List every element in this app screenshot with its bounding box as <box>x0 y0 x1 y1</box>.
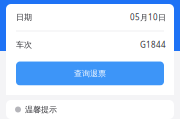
button[interactable]: 日期 <box>6 4 174 30</box>
staticText: 日期 <box>16 12 32 22</box>
staticText: G1844 <box>140 39 166 50</box>
button[interactable]: 车次 <box>6 31 174 58</box>
staticText: 温馨提示 <box>25 105 57 114</box>
staticText: 05月10日 <box>130 12 166 22</box>
button[interactable]: 查询退票 <box>16 61 164 85</box>
staticText: 查询退票 <box>74 69 106 78</box>
staticText: 车次 <box>16 40 32 50</box>
